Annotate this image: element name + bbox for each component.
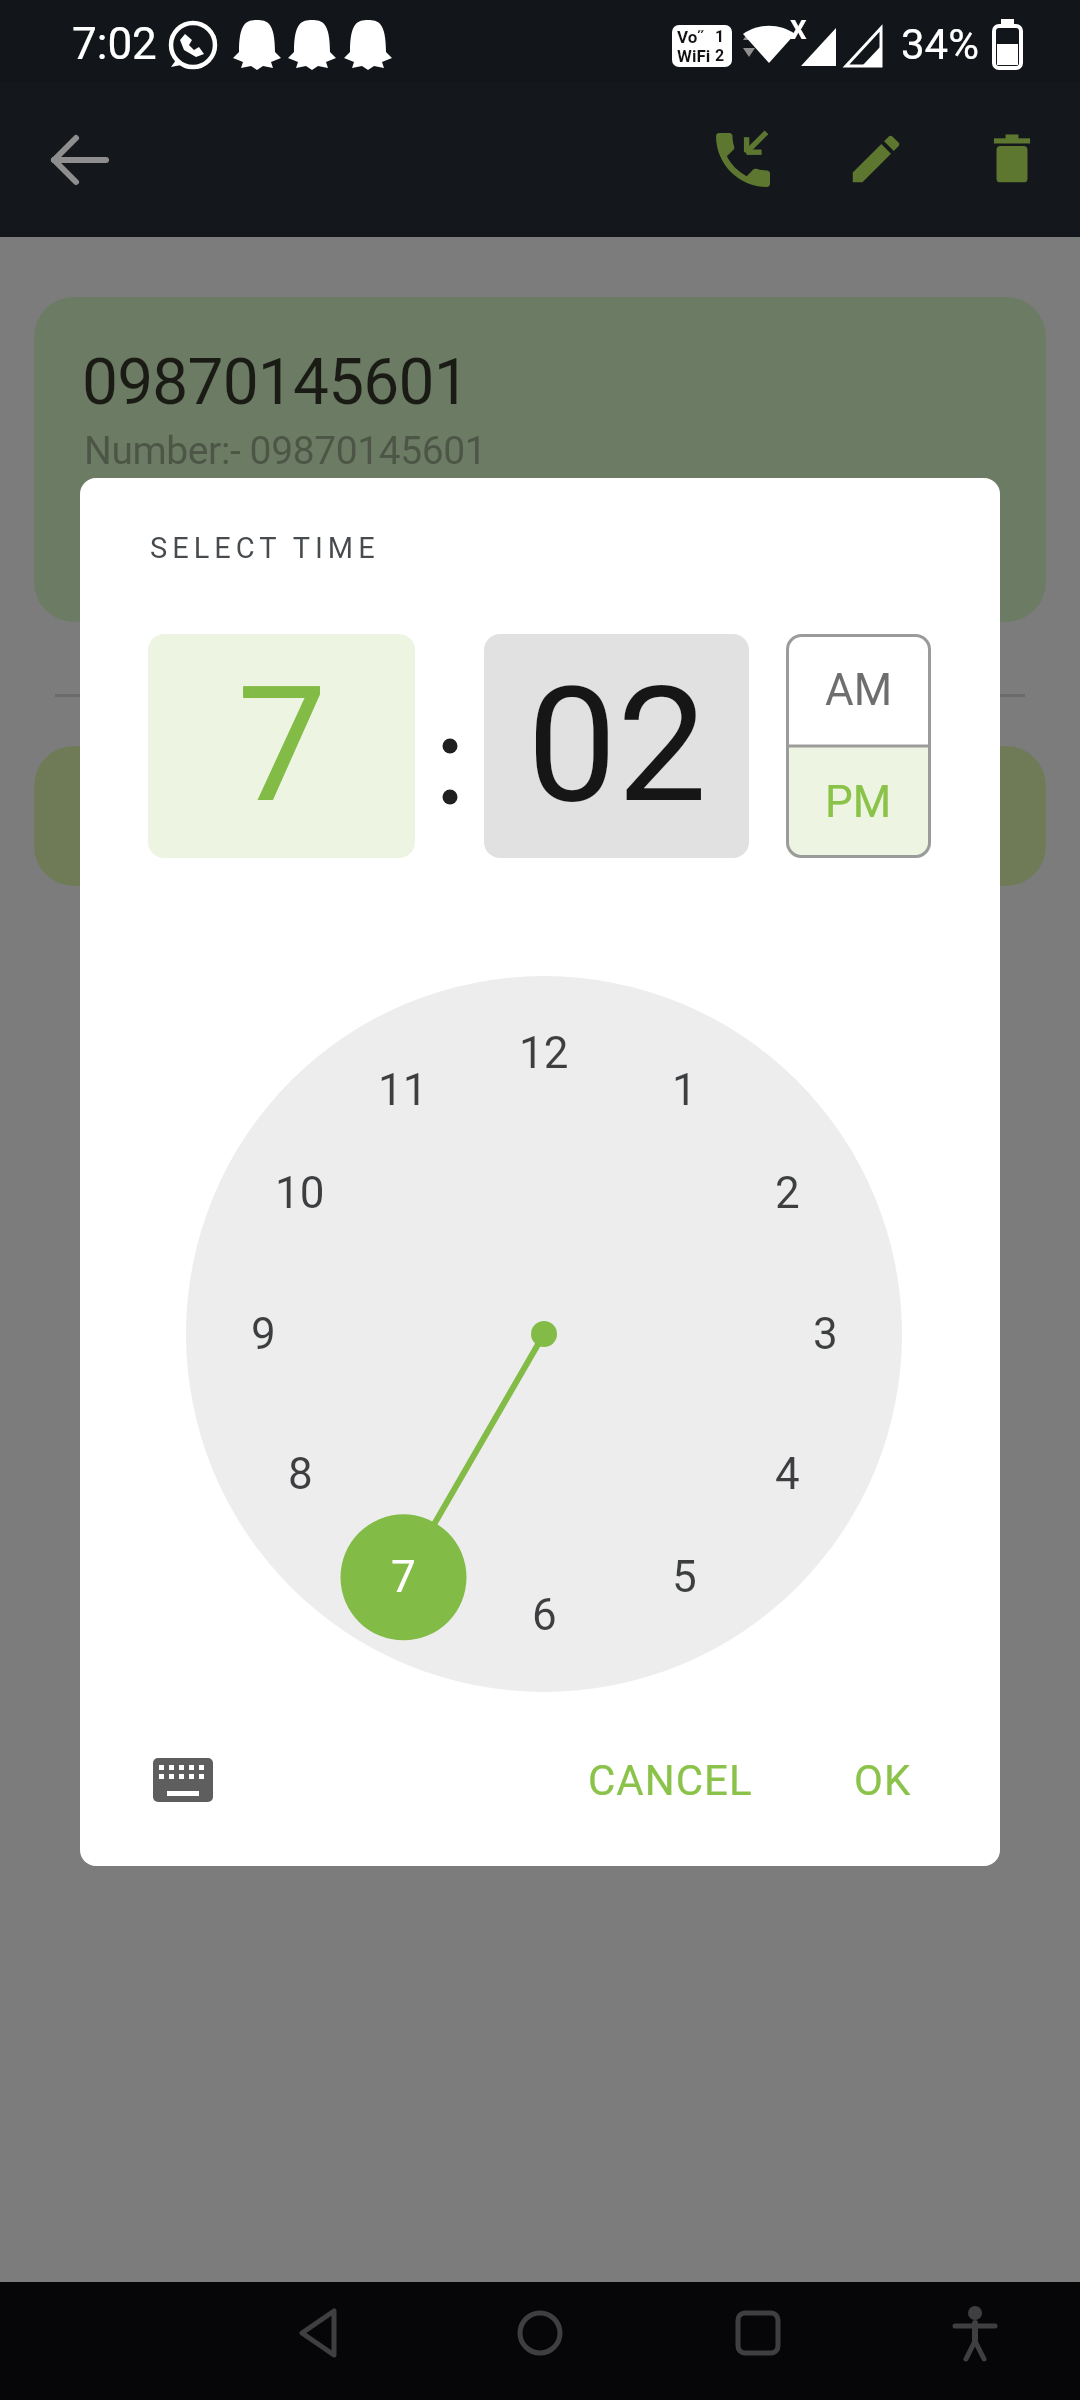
staticText: PM (825, 776, 892, 828)
staticText: 3 (813, 1308, 838, 1360)
button[interactable] (40, 120, 120, 200)
staticText: 7 (237, 652, 327, 840)
staticText: SELECT TIME (150, 531, 380, 565)
staticText: 11 (378, 1064, 428, 1116)
button[interactable]: CANCEL (580, 1749, 760, 1811)
button[interactable] (707, 124, 779, 196)
staticText: WiFi (677, 46, 711, 65)
staticText: 12 (519, 1027, 569, 1079)
staticText: 2 (775, 1167, 800, 1219)
staticText: OK (854, 1756, 912, 1805)
staticText: 09870145601 (82, 345, 469, 417)
staticText: 9 (251, 1308, 276, 1360)
button[interactable]: PM (786, 752, 931, 852)
staticText: 10 (275, 1167, 325, 1219)
button[interactable]: 7 (148, 634, 415, 858)
staticText: 1 (715, 27, 725, 46)
button[interactable] (282, 2293, 362, 2373)
button[interactable]: AM (786, 640, 931, 740)
button[interactable] (143, 1749, 223, 1811)
button[interactable] (981, 128, 1043, 190)
staticText: 7 (391, 1551, 416, 1603)
staticText: CANCEL (588, 1756, 753, 1805)
staticText: 7:02 (72, 18, 157, 70)
button[interactable] (935, 2293, 1015, 2373)
staticText: 2 (715, 46, 725, 65)
staticText: 34% (901, 20, 979, 68)
staticText: 6 (532, 1589, 557, 1641)
staticText: Voʺ (677, 27, 705, 46)
button[interactable]: 02 (484, 634, 749, 858)
staticText: 8 (288, 1448, 313, 1500)
staticText: X (790, 15, 807, 43)
staticText: 5 (672, 1551, 697, 1603)
button[interactable] (500, 2293, 580, 2373)
staticText: 1 (672, 1064, 697, 1116)
staticText: 4 (775, 1448, 800, 1500)
button[interactable] (845, 128, 907, 190)
staticText: 02 (527, 652, 707, 840)
button[interactable]: OK (830, 1749, 935, 1811)
button[interactable] (718, 2293, 798, 2373)
staticText: AM (825, 664, 893, 716)
staticText: Number:- 09870145601 (84, 428, 487, 474)
